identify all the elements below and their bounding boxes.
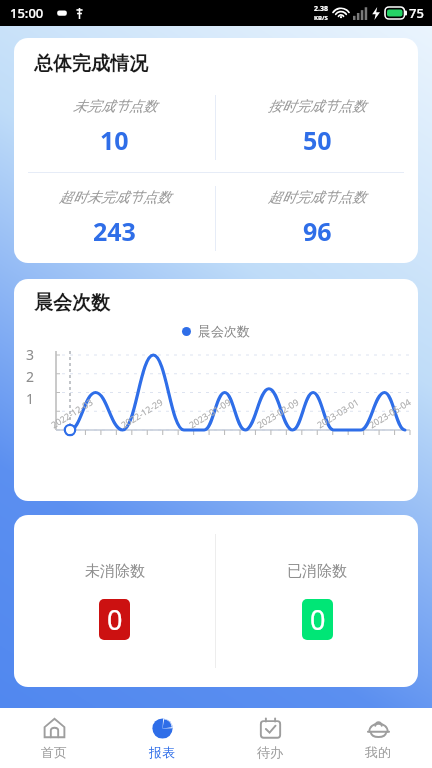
staticText: 96 [303,214,332,248]
staticText: 50 [303,123,332,157]
button[interactable]: 超时完成节点数 [216,173,418,263]
button[interactable]: 我的 [324,708,432,768]
staticText: 晨会次数 [34,291,110,315]
button[interactable]: 按时完成节点数 [216,82,418,172]
staticText: 未完成节点数 [73,98,157,116]
staticText: 10 [100,123,129,157]
button[interactable]: 未消除数 [14,515,215,687]
staticText: 已消除数 [287,562,347,581]
staticText: 晨会次数 [198,323,250,339]
staticText: 75 [409,4,424,22]
staticText: 2022-12-29 [118,395,165,431]
staticText: 2023-01-09 [186,395,233,431]
staticText: 超时完成节点数 [268,189,366,207]
staticText: 2 [26,367,35,386]
staticText: 超时未完成节点数 [59,189,171,207]
staticText: 0 [310,601,326,638]
staticText: 报表 [149,744,175,760]
staticText: KB/S [314,14,328,22]
button[interactable]: 首页 [0,708,108,768]
staticText: 2023-03-01 [314,395,361,431]
staticText: 按时完成节点数 [268,98,366,116]
button[interactable]: 超时未完成节点数 [14,173,215,263]
button[interactable]: 报表 [108,708,216,768]
staticText: 总体完成情况 [34,52,148,76]
staticText: 2023-05-04 [366,395,413,431]
button[interactable]: 未完成节点数 [14,82,215,172]
staticText: 首页 [41,744,67,760]
staticText: 未消除数 [85,562,145,581]
staticText: 243 [93,214,136,248]
staticText: 15:00 [10,4,44,22]
staticText: 3 [26,345,35,364]
staticText: 待办 [257,744,283,760]
staticText: 我的 [365,744,391,760]
staticText: 2023-02-09 [254,395,301,431]
staticText: 1 [26,389,35,408]
staticText: 0 [107,601,123,638]
button[interactable]: 已消除数 [216,515,418,687]
staticText: 2022-12-03 [48,395,95,431]
staticText: 2.38 [314,4,328,14]
button[interactable]: 待办 [216,708,324,768]
